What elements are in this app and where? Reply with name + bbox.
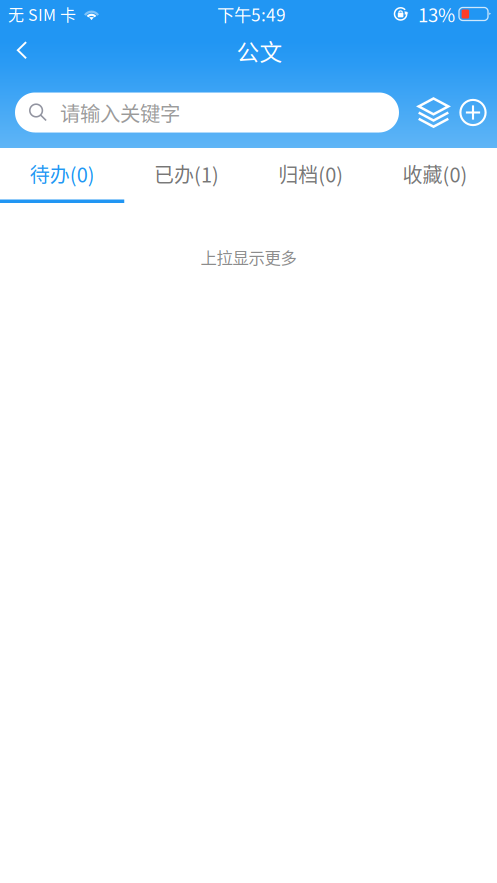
button[interactable]: 新建	[454, 87, 492, 137]
staticText: 归档(0)	[278, 159, 343, 188]
button[interactable]: 切换视图	[413, 87, 454, 137]
staticText: 上拉显示更多	[200, 245, 296, 269]
staticText: 13%	[418, 0, 455, 27]
staticText: 已办(1)	[154, 159, 219, 188]
staticText: 待办(0)	[30, 159, 95, 188]
staticText: 无 SIM 卡	[8, 2, 76, 26]
staticText: 收藏(0)	[402, 159, 467, 188]
button[interactable]: 已办(1)	[124, 148, 248, 203]
staticText: 下午5:49	[217, 1, 286, 27]
button[interactable]: 待办(0)	[0, 148, 124, 203]
staticText: 公文	[236, 34, 282, 67]
staticText: 请输入关键字	[60, 98, 180, 127]
button[interactable]: 归档(0)	[248, 148, 373, 203]
button[interactable]: 收藏(0)	[373, 148, 497, 203]
button[interactable]: 返回	[0, 28, 44, 72]
